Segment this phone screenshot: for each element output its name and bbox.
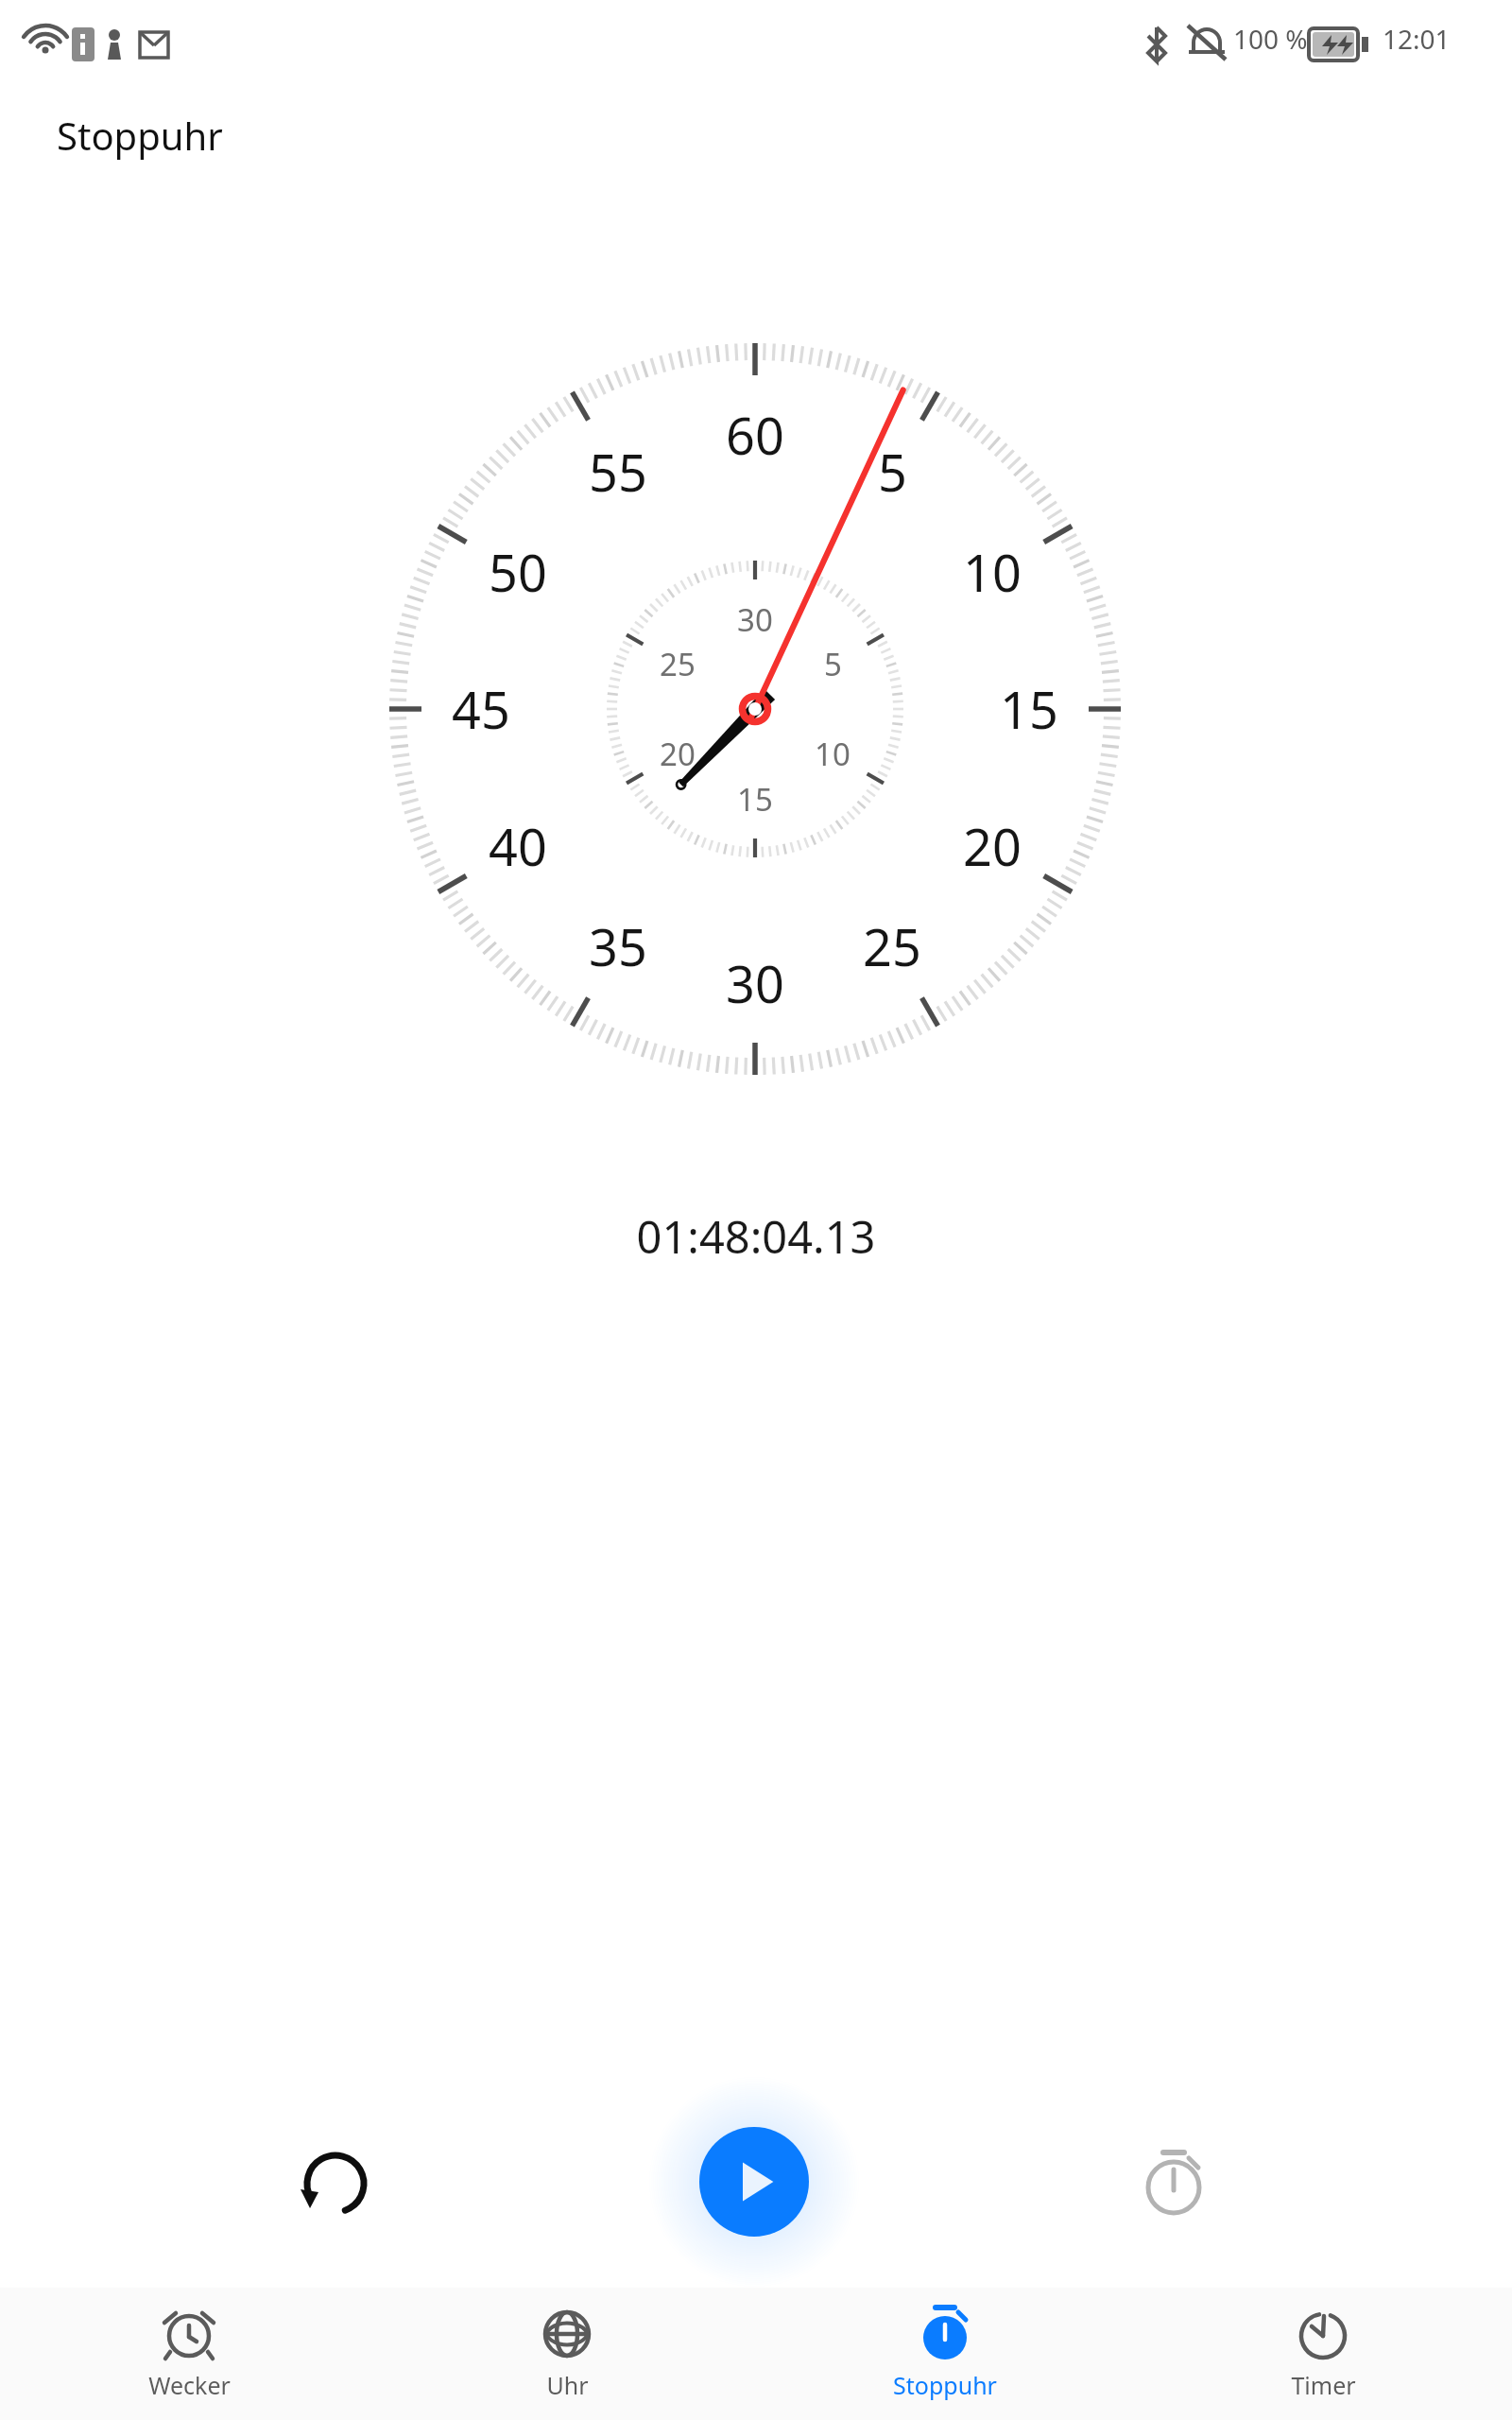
staticText: Timer: [1291, 2369, 1356, 2401]
staticText: 01:48:04.13: [0, 1206, 1512, 1267]
staticText: 10: [963, 537, 1022, 607]
staticText: 20: [963, 811, 1022, 881]
staticText: 40: [489, 811, 547, 881]
staticText: 5: [824, 643, 842, 685]
button[interactable]: Timer: [1134, 2288, 1512, 2420]
staticText: 12:01: [1383, 21, 1451, 57]
button[interactable]: Wecker: [0, 2288, 378, 2420]
staticText: 15: [1000, 674, 1058, 744]
staticText: 60: [726, 400, 784, 470]
staticText: Wecker: [148, 2369, 231, 2401]
staticText: 15: [737, 778, 773, 821]
staticText: 30: [726, 948, 784, 1018]
button[interactable]: Zurücksetzen: [279, 2127, 392, 2240]
staticText: 20: [660, 733, 696, 775]
button[interactable]: Stoppuhr: [756, 2288, 1134, 2420]
staticText: 10: [815, 733, 850, 775]
button[interactable]: Start: [699, 2127, 809, 2237]
staticText: 25: [660, 643, 696, 685]
staticText: 45: [452, 674, 510, 744]
button[interactable]: Uhr: [378, 2288, 756, 2420]
staticText: Stoppuhr: [893, 2369, 997, 2401]
staticText: 50: [489, 537, 547, 607]
staticText: 100 %: [1233, 21, 1308, 57]
staticText: 25: [863, 911, 921, 981]
button[interactable]: Runde: [1117, 2127, 1230, 2240]
staticText: 5: [878, 437, 907, 507]
staticText: 55: [589, 437, 647, 507]
staticText: 35: [589, 911, 647, 981]
staticText: 30: [737, 598, 773, 641]
staticText: Stoppuhr: [57, 110, 223, 161]
staticText: Uhr: [546, 2369, 589, 2401]
